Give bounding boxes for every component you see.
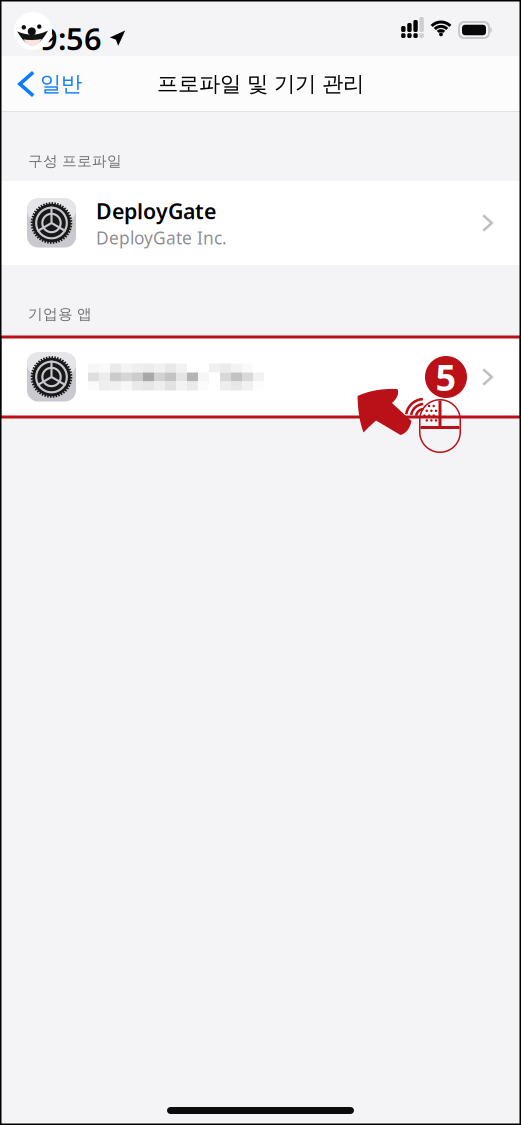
button[interactable]: 일반 <box>0 61 82 106</box>
staticText: 프로파일 및 기기 관리 <box>157 71 364 97</box>
staticText: 9:56 <box>40 18 102 59</box>
staticText: DeployGate <box>96 197 216 225</box>
staticText: 구성 프로파일 <box>28 152 122 170</box>
staticText: DeployGate Inc. <box>96 226 227 249</box>
staticText: 기업용 앱 <box>28 305 92 323</box>
button[interactable]: DeployGate <box>0 181 521 265</box>
staticText: 일반 <box>40 71 82 97</box>
staticText: 5 <box>435 353 456 401</box>
button[interactable] <box>0 337 521 417</box>
